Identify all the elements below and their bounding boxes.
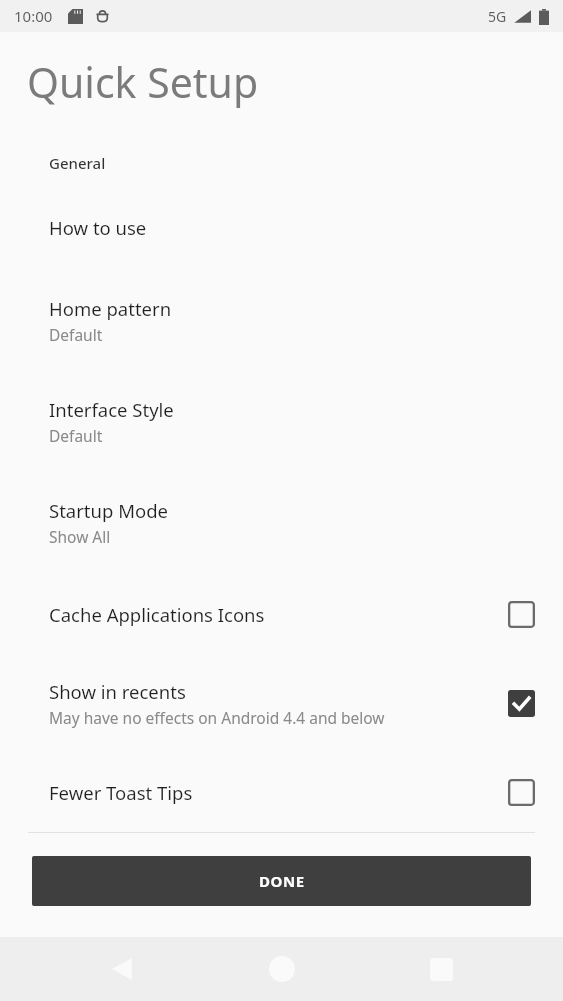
staticText: General (49, 153, 106, 173)
button[interactable]: Recents (417, 945, 465, 993)
staticText: How to use (49, 215, 147, 240)
staticText: Show All (49, 526, 111, 547)
button[interactable]: DONE (32, 856, 531, 906)
staticText: Quick Setup (27, 54, 259, 110)
other: Unchecked (508, 601, 535, 628)
staticText: Cache Applications Icons (49, 602, 265, 627)
staticText: Startup Mode (49, 498, 168, 523)
other: Unchecked (508, 779, 535, 806)
staticText: DONE (259, 871, 305, 891)
staticText: Default (49, 324, 103, 345)
staticText: Default (49, 425, 103, 446)
button[interactable]: Back (98, 945, 146, 993)
staticText: May have no effects on Android 4.4 and b… (49, 707, 385, 728)
button[interactable]: How to use (0, 211, 563, 244)
staticText: 5G (488, 7, 507, 26)
other: Checked (508, 690, 535, 717)
staticText: Interface Style (49, 397, 174, 422)
button[interactable]: Home pattern (0, 292, 563, 349)
staticText: Fewer Toast Tips (49, 780, 193, 805)
button[interactable]: Startup Mode (0, 494, 563, 551)
staticText: Show in recents (49, 679, 186, 704)
button[interactable]: Home (258, 945, 306, 993)
button[interactable]: Interface Style (0, 393, 563, 450)
button[interactable]: Show in recents (0, 675, 563, 732)
staticText: 10:00 (14, 6, 53, 26)
button[interactable]: Cache Applications Icons (0, 597, 563, 632)
staticText: Home pattern (49, 296, 172, 321)
button[interactable]: Fewer Toast Tips (0, 775, 563, 810)
